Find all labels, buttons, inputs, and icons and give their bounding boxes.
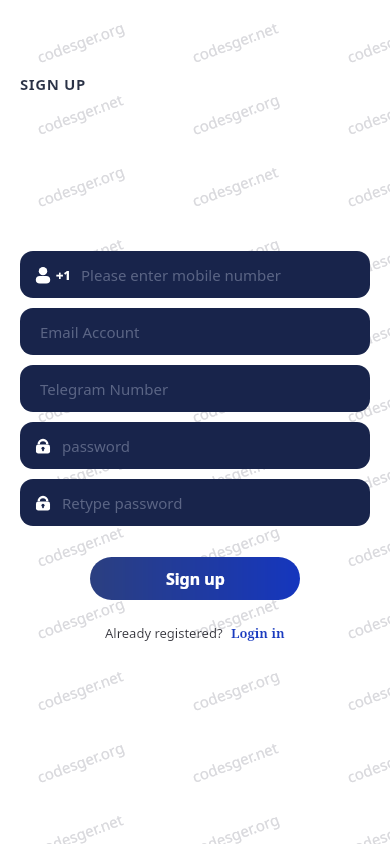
staticText: Telegram Number: [40, 379, 169, 399]
staticText: codesger.net: [344, 809, 390, 844]
staticText: Please enter mobile number: [81, 265, 281, 285]
button[interactable]: +1: [20, 251, 370, 298]
staticText: codesger.net: [34, 89, 126, 139]
staticText: codesger.org: [189, 521, 282, 571]
staticText: codesger.org: [344, 305, 390, 355]
staticText: codesger.net: [34, 377, 126, 427]
staticText: password: [62, 436, 130, 456]
staticText: codesger.org: [34, 161, 127, 211]
staticText: codesger.org: [344, 593, 390, 643]
button[interactable]: Telegram Number: [20, 365, 370, 412]
staticText: codesger.net: [34, 665, 126, 715]
staticText: codesger.org: [189, 233, 282, 283]
staticText: Retype password: [62, 493, 183, 513]
staticText: codesger.org: [189, 89, 282, 139]
staticText: codesger.org: [34, 737, 127, 787]
button[interactable]: Retype password: [20, 479, 370, 526]
staticText: codesger.org: [189, 665, 282, 715]
staticText: +1: [56, 266, 71, 284]
staticText: codesger.net: [344, 665, 390, 715]
staticText: codesger.net: [189, 593, 281, 643]
staticText: codesger.org: [34, 593, 127, 643]
staticText: Email Account: [40, 322, 140, 342]
staticText: codesger.net: [34, 521, 126, 571]
staticText: codesger.net: [189, 449, 281, 499]
staticText: codesger.org: [189, 809, 282, 844]
staticText: codesger.org: [344, 17, 390, 67]
staticText: Login in: [231, 624, 285, 642]
staticText: codesger.org: [344, 161, 390, 211]
staticText: codesger.org: [189, 377, 282, 427]
button[interactable]: Email Account: [20, 308, 370, 355]
staticText: codesger.net: [189, 737, 281, 787]
staticText: codesger.net: [34, 809, 126, 844]
staticText: codesger.net: [34, 233, 126, 283]
staticText: codesger.net: [344, 377, 390, 427]
staticText: codesger.net: [344, 89, 390, 139]
staticText: codesger.net: [344, 521, 390, 571]
staticText: codesger.org: [34, 17, 127, 67]
button[interactable]: Sign up: [90, 557, 300, 600]
staticText: codesger.org: [34, 305, 127, 355]
button[interactable]: password: [20, 422, 370, 469]
staticText: Already registered?: [105, 624, 223, 642]
staticText: SIGN UP: [20, 74, 86, 94]
staticText: codesger.net: [189, 17, 281, 67]
staticText: codesger.net: [344, 233, 390, 283]
button[interactable]: Login in: [231, 624, 285, 642]
staticText: codesger.org: [34, 449, 127, 499]
staticText: codesger.net: [189, 305, 281, 355]
staticText: Sign up: [166, 568, 225, 590]
staticText: codesger.net: [189, 161, 281, 211]
staticText: codesger.org: [344, 449, 390, 499]
staticText: codesger.org: [344, 737, 390, 787]
